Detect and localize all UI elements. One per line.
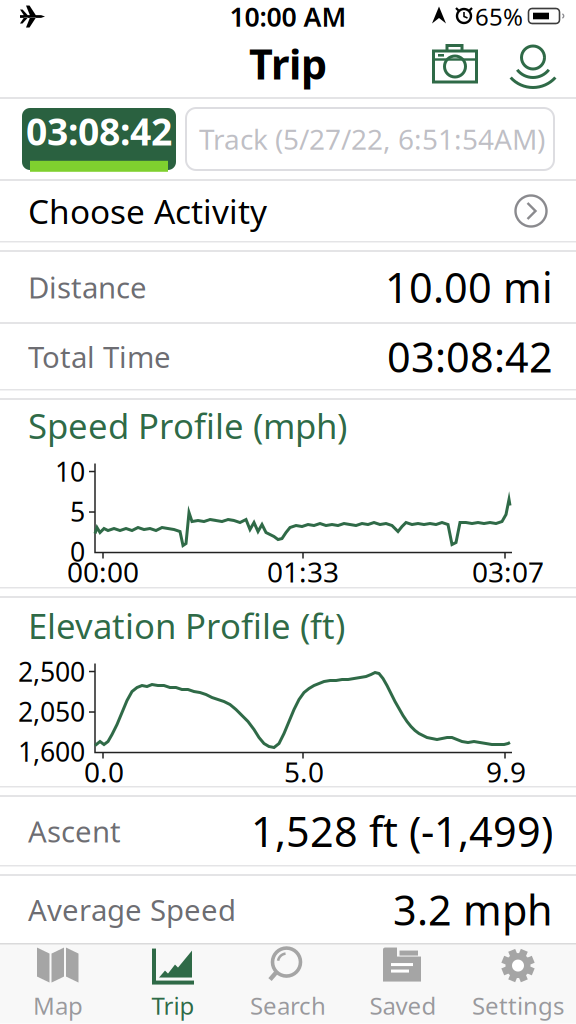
staticText: 10:00 AM [229,0,346,34]
staticText: 5.0 [284,753,324,790]
staticText: 03:08:42 [26,106,172,156]
staticText: Speed Profile (mph) [28,402,347,448]
staticText: 01:33 [267,553,339,590]
staticText: Average Speed [28,890,236,929]
button[interactable]: Trip [115,944,230,1023]
staticText: Settings [472,990,564,1021]
staticText: 0.0 [84,753,124,790]
staticText: 03:08:42 [387,329,553,384]
staticText: 03:07 [472,553,544,590]
button[interactable]: Choose Activity [0,180,576,241]
staticText: 5 [70,494,85,529]
staticText: Total Time [28,337,171,376]
button[interactable]: Saved [345,944,460,1023]
staticText: Trip [151,990,194,1021]
staticText: Ascent [28,811,121,850]
button[interactable]: Record Track [511,44,557,90]
staticText: Trip [249,36,327,91]
staticText: Choose Activity [28,189,267,233]
staticText: Map [33,990,83,1021]
staticText: Distance [28,267,147,306]
staticText: 3.2 mph [393,882,553,937]
button[interactable]: Settings [460,944,575,1023]
staticText: 2,500 [18,654,85,689]
staticText: 0 [70,534,85,569]
button[interactable]: Search [230,944,345,1023]
staticText: 1,528 ft (-1,499) [251,804,553,858]
staticText: Elevation Profile (ft) [28,602,345,648]
staticText: 00:00 [67,553,139,590]
staticText: Track (5/27/22, 6:51:54AM) [199,120,545,158]
staticText: 10.00 mi [385,260,553,314]
button[interactable]: Map [0,944,115,1023]
staticText: 65% [475,1,523,32]
button[interactable]: Camera [432,43,478,83]
staticText: 1,600 [18,734,85,769]
staticText: 10 [55,454,85,489]
staticText: Saved [369,990,436,1021]
button[interactable]: Track name [186,108,554,170]
staticText: 9.9 [486,753,526,790]
staticText: 2,050 [18,694,85,729]
button[interactable]: Timer [22,108,176,170]
staticText: Search [250,990,326,1021]
